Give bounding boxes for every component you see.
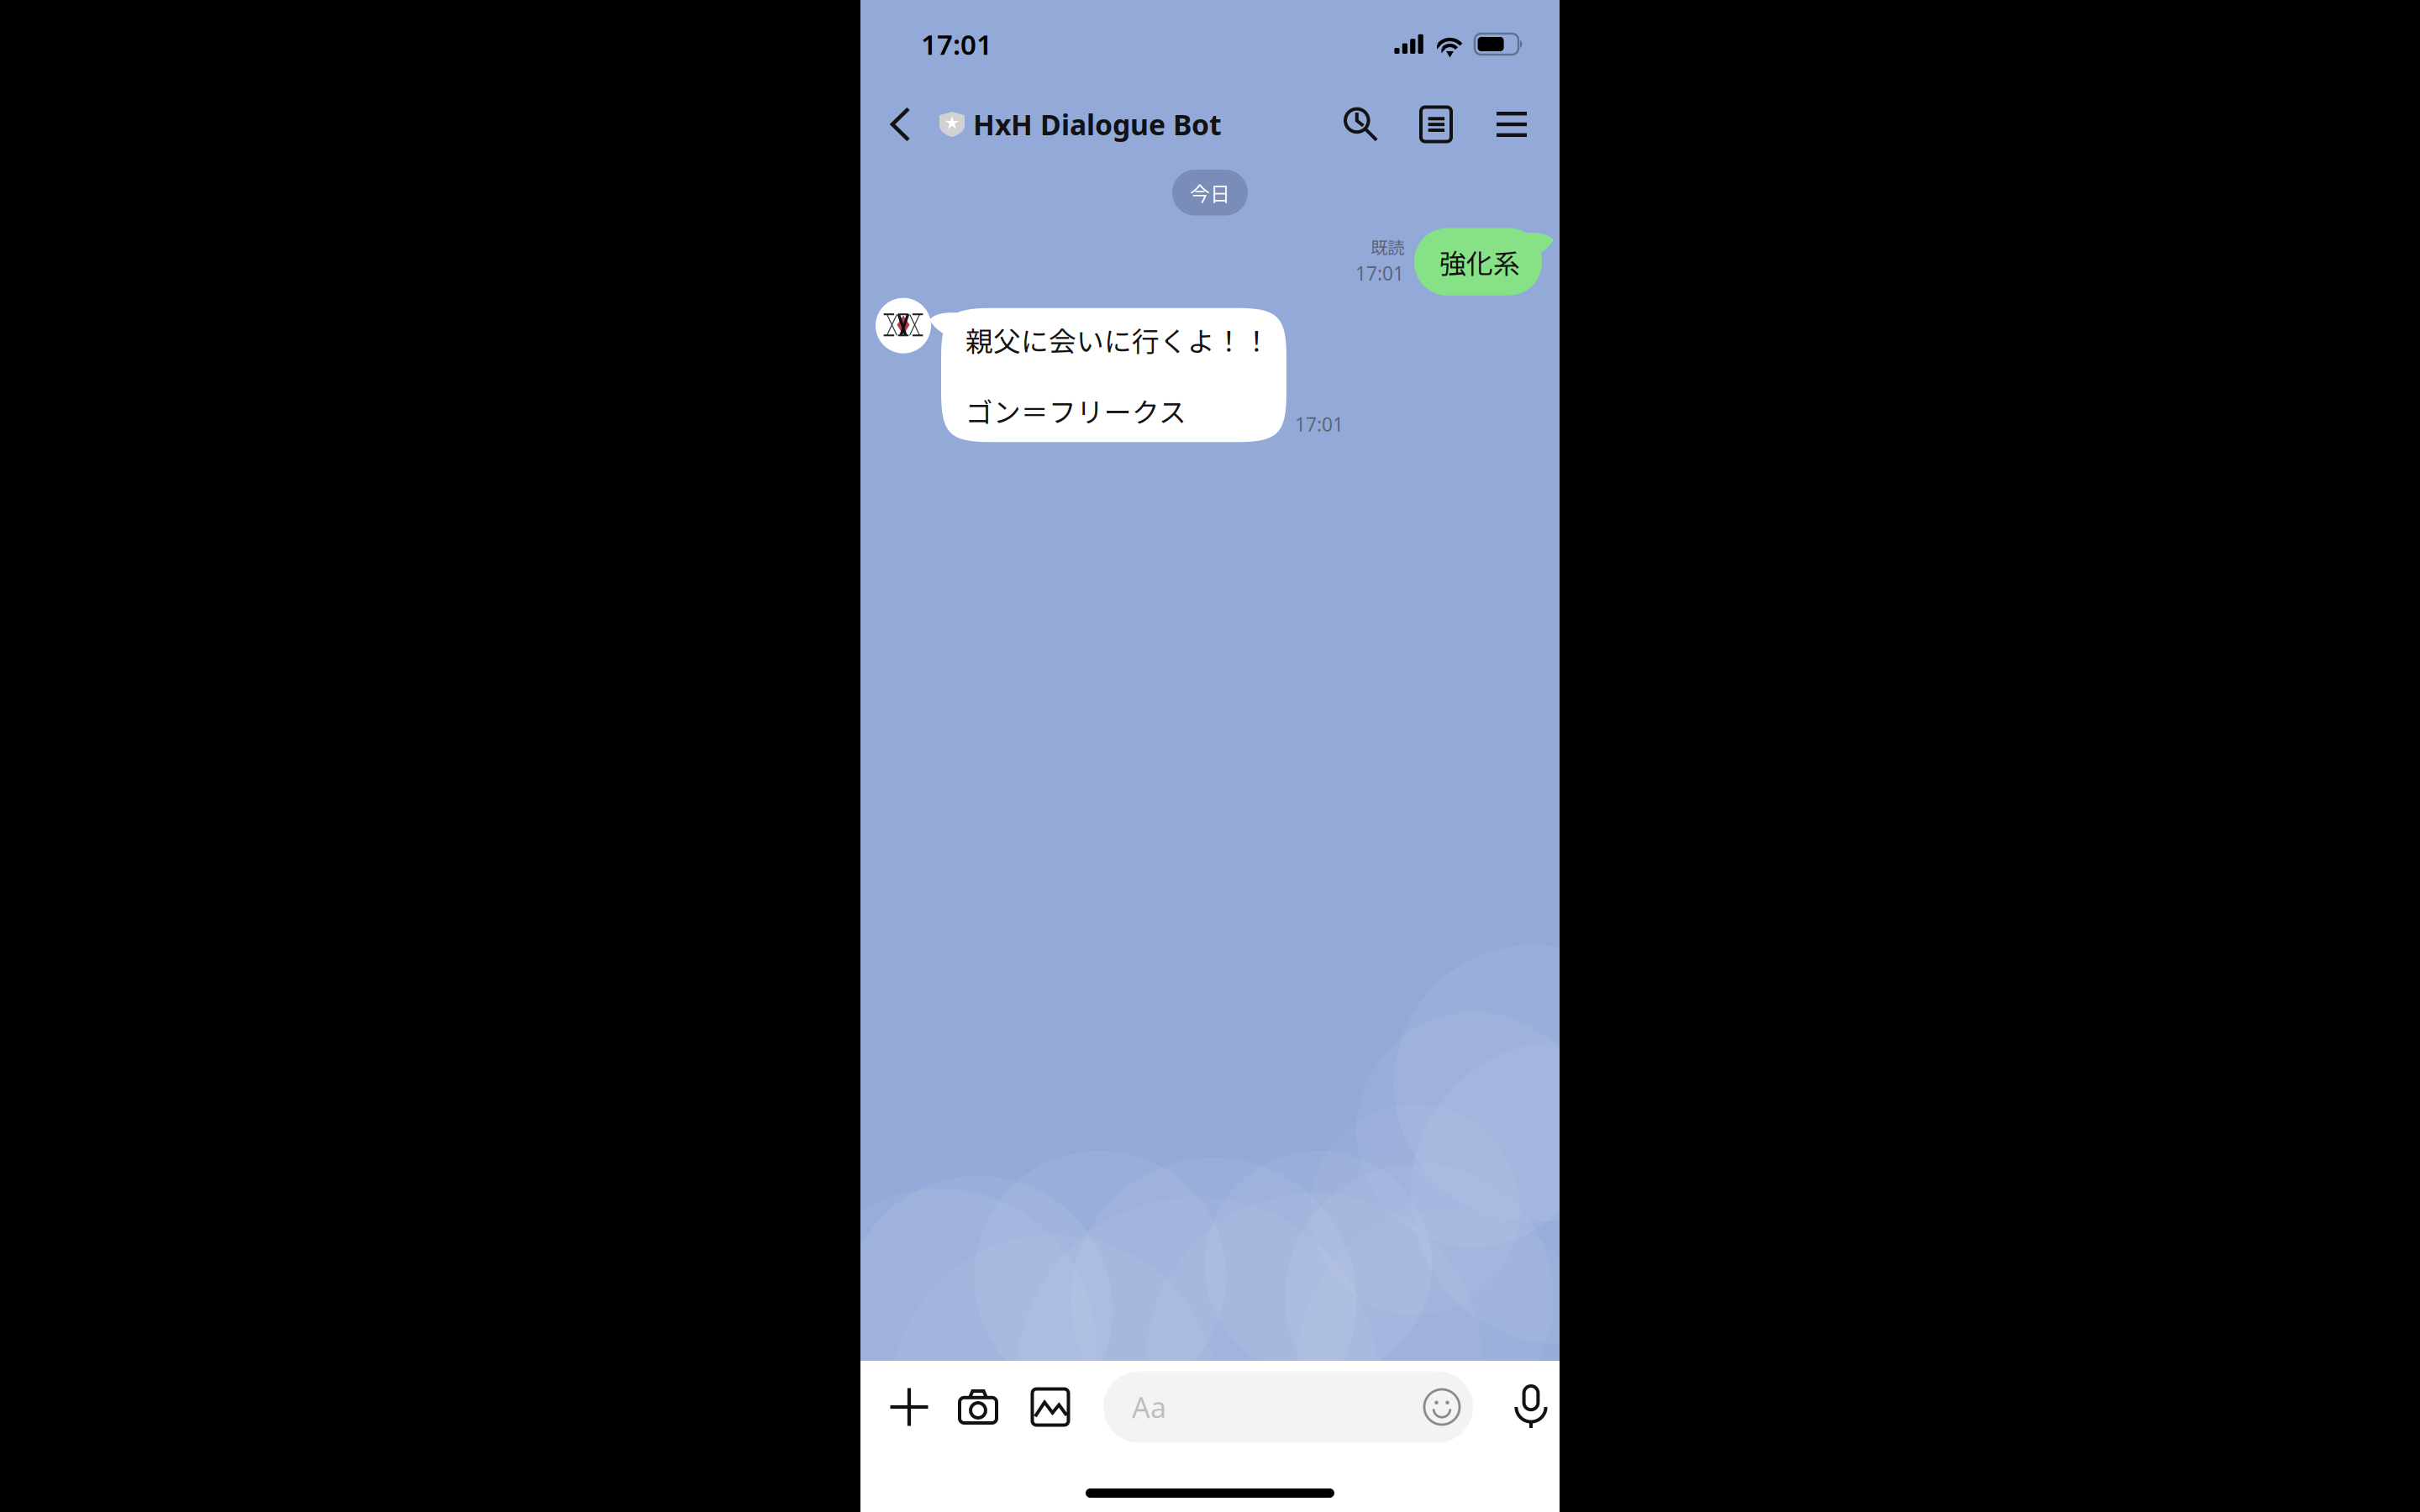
staticText: 今日 [1190, 178, 1230, 207]
staticText: HxH Dialogue Bot [973, 105, 1222, 144]
button[interactable]: Photos [1013, 1368, 1088, 1446]
staticText: Aa [1132, 1388, 1166, 1426]
staticText: ゴン＝フリークス [965, 391, 1186, 430]
button[interactable]: Search [1323, 88, 1398, 160]
staticText: 17:01 [921, 25, 992, 63]
button[interactable]: More [875, 1368, 944, 1446]
staticText: 親父に会いに行くよ！！ [965, 320, 1270, 360]
staticText: 強化系 [1439, 242, 1520, 281]
button[interactable]: Camera [944, 1368, 1013, 1446]
button[interactable]: Back [871, 88, 939, 160]
staticText: 17:01 [1295, 411, 1344, 437]
staticText: 17:01 [1355, 260, 1404, 286]
button[interactable]: Menu [1474, 88, 1549, 160]
button[interactable]: Aa [1103, 1371, 1473, 1443]
button[interactable]: Voice message [1504, 1368, 1558, 1446]
staticText: 既読 [1370, 234, 1404, 259]
button[interactable]: Notes [1398, 88, 1474, 160]
